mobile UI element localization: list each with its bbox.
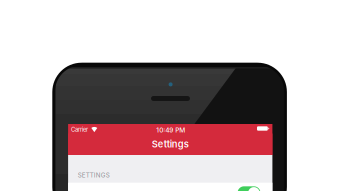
button[interactable]: Settings — [68, 133, 272, 155]
staticText: 10:49 PM — [156, 126, 185, 134]
staticText: Settings — [152, 138, 189, 150]
staticText: SETTINGS — [78, 171, 110, 179]
button[interactable]: Notifications — [68, 183, 272, 191]
staticText: Carrier — [71, 126, 88, 133]
